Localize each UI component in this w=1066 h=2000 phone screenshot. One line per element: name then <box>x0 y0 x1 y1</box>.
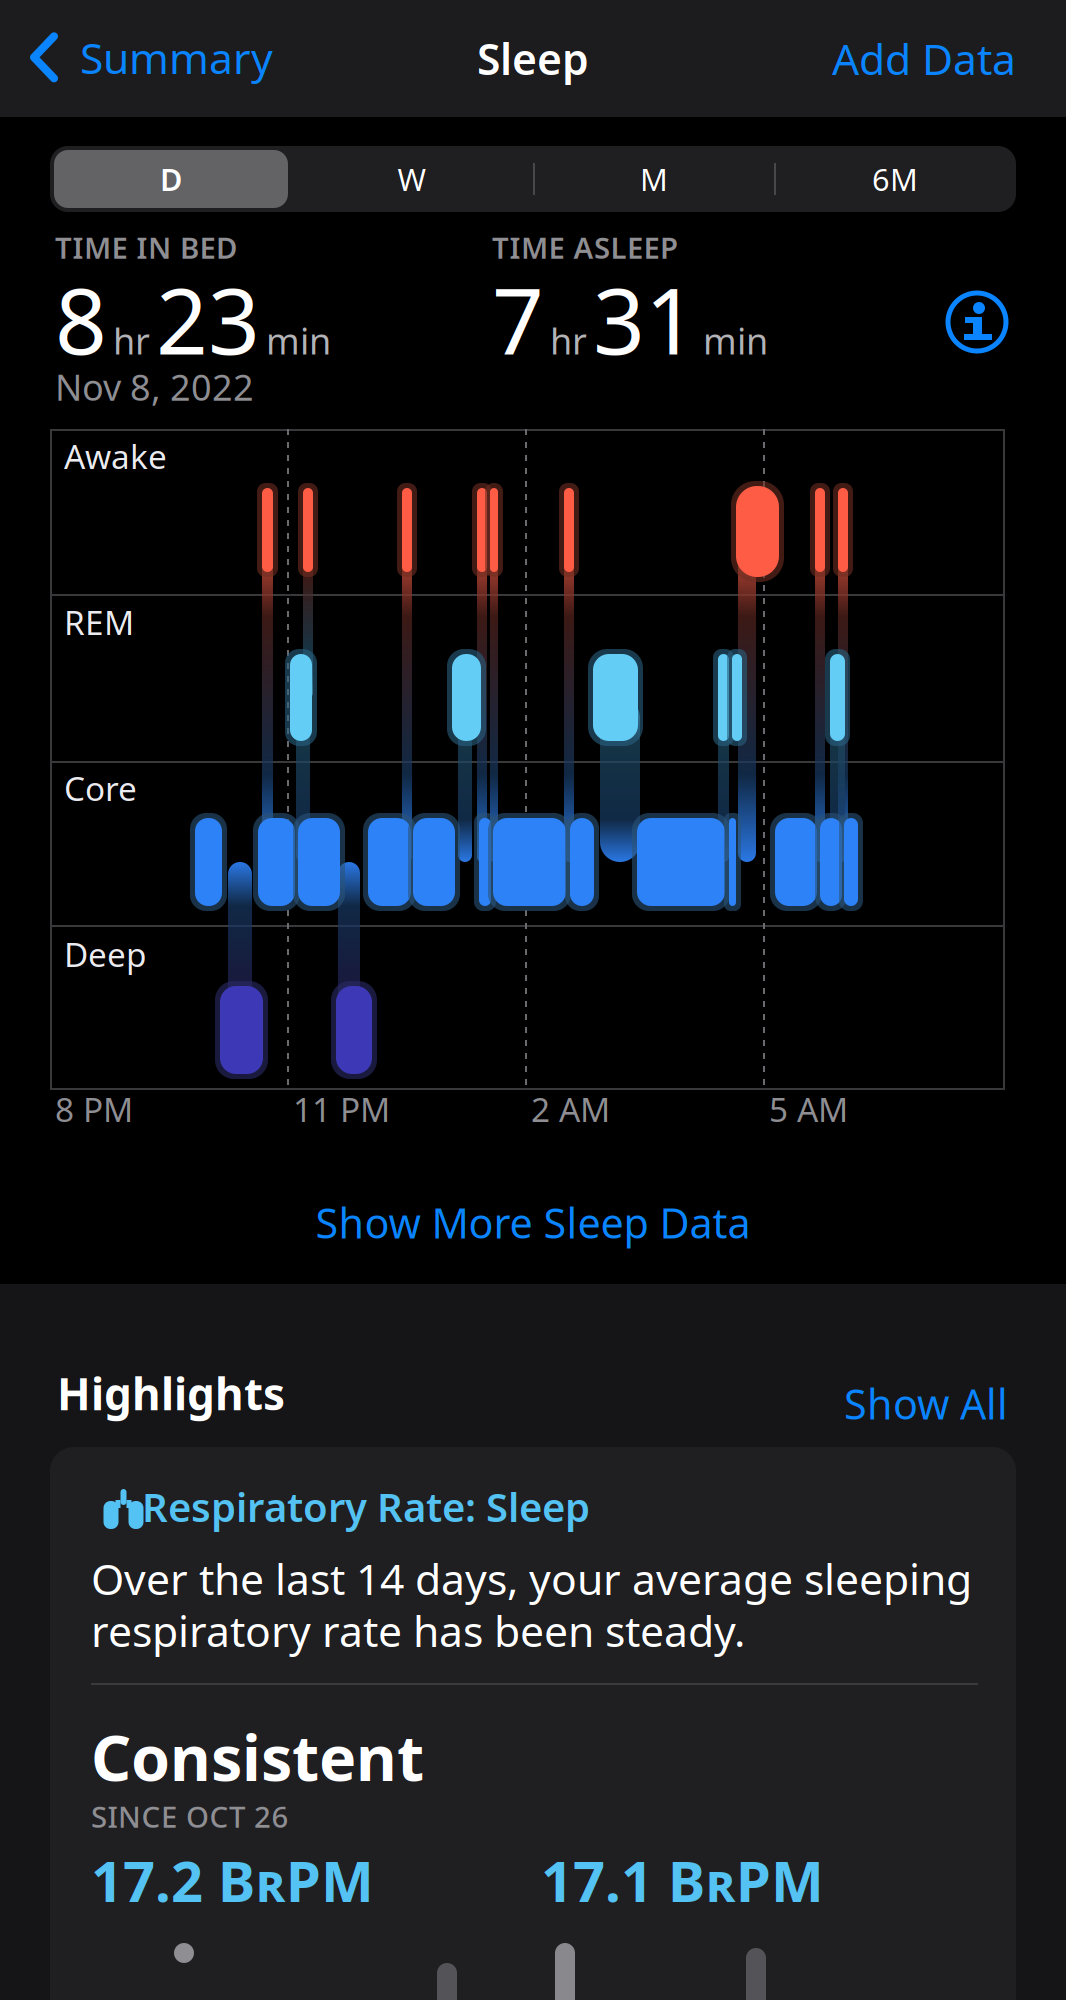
staticText: 7 <box>492 259 544 379</box>
staticText: 11 PM <box>293 1087 390 1131</box>
staticText: TIME IN BED <box>55 228 237 267</box>
staticText: 23 <box>156 259 260 379</box>
staticText: Sleep <box>477 30 589 87</box>
staticText: 5 AM <box>769 1087 848 1131</box>
staticText: W <box>397 159 426 199</box>
staticText: hr <box>113 316 150 364</box>
staticText: 6M <box>872 159 918 199</box>
staticText: Deep <box>64 932 147 976</box>
staticText: min <box>703 316 768 364</box>
staticText: REM <box>64 600 134 644</box>
staticText: 2 AM <box>531 1087 610 1131</box>
button[interactable]: M <box>533 146 775 212</box>
staticText: Add Data <box>832 30 1016 87</box>
button[interactable]: Add Data <box>0 30 1016 87</box>
staticText: Awake <box>64 434 167 478</box>
button[interactable]: Show More Sleep Data <box>0 1195 1066 1250</box>
button[interactable]: Show All <box>50 1376 1008 1431</box>
button[interactable]: W <box>291 146 533 212</box>
button[interactable]: Respiratory Rate: Sleep <box>50 1447 1016 2000</box>
staticText: Consistent <box>91 1715 424 1798</box>
button[interactable]: 6M <box>774 146 1016 212</box>
staticText: D <box>160 159 182 199</box>
staticText: min <box>266 316 331 364</box>
staticText: 31 <box>593 259 697 379</box>
staticText: Respiratory Rate: Sleep <box>142 1480 590 1533</box>
staticText: hr <box>550 316 587 364</box>
staticText: 8 PM <box>55 1087 133 1131</box>
staticText: 8 <box>55 259 107 379</box>
staticText: Nov 8, 2022 <box>55 363 254 411</box>
button[interactable]: D <box>50 146 292 212</box>
button[interactable]: Summary <box>32 29 273 86</box>
button[interactable] <box>948 293 1006 351</box>
staticText: Show More Sleep Data <box>315 1195 750 1250</box>
staticText: Summary <box>80 29 273 86</box>
staticText: TIME ASLEEP <box>492 228 678 267</box>
staticText: Show All <box>844 1376 1008 1431</box>
staticText: SINCE OCT 26 <box>91 1797 288 1836</box>
staticText: 17.1 BʀPM <box>541 1843 824 1917</box>
staticText: M <box>640 159 668 199</box>
staticText: respiratory rate has been steady. <box>91 1602 745 1659</box>
staticText: Core <box>64 766 137 810</box>
staticText: 17.2 BʀPM <box>91 1843 374 1917</box>
staticText: Highlights <box>57 1364 285 1422</box>
staticText: Over the last 14 days, your average slee… <box>91 1550 972 1607</box>
